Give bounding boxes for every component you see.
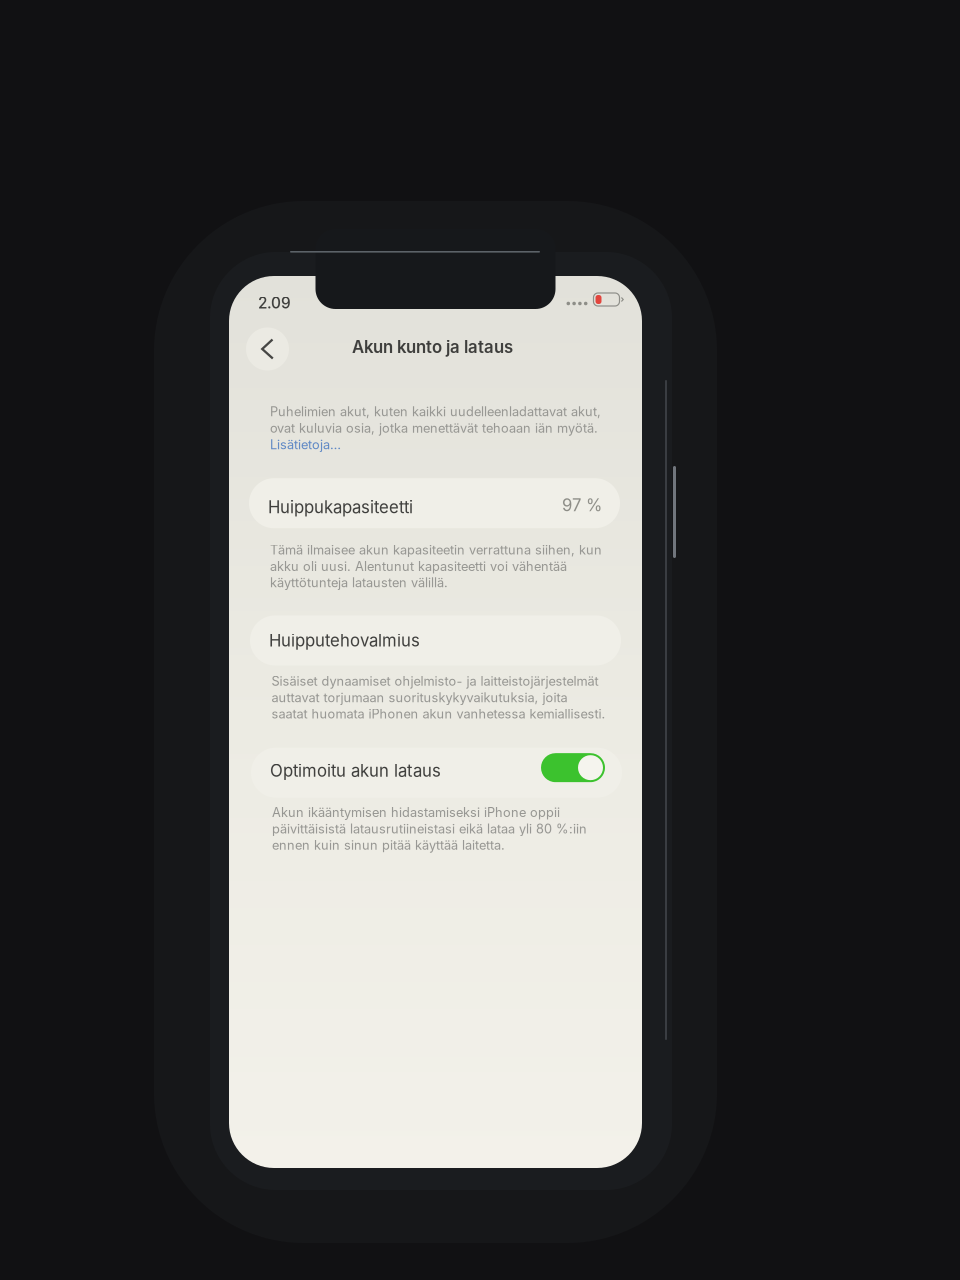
staticText: 97 %: [562, 495, 602, 515]
staticText: Sisäiset dynaamiset ohjelmisto- ja laitt…: [271, 673, 605, 722]
staticText: Puhelimien akut, kuten kaikki uudelleenl…: [270, 404, 601, 436]
button[interactable]: Huippukapasiteetti: [249, 478, 620, 528]
button[interactable]: Lisätietoja…: [270, 437, 341, 452]
staticText: 2.09: [258, 294, 291, 312]
staticText: Huippukapasiteetti: [268, 497, 413, 517]
staticText: Tämä ilmaisee akun kapasiteetin verrattu…: [270, 542, 602, 590]
button[interactable]: Huipputehovalmius: [250, 615, 621, 665]
staticText: Huipputehovalmius: [269, 630, 420, 651]
staticText: Lisätietoja…: [270, 437, 341, 452]
button[interactable]: Back: [246, 327, 289, 370]
button[interactable]: Optimoitu akun lataus: [251, 748, 622, 798]
staticText: Optimoitu akun lataus: [270, 761, 441, 781]
staticText: Akun ikääntymisen hidastamiseksi iPhone …: [272, 805, 587, 853]
staticText: Akun kunto ja lataus: [352, 337, 513, 357]
